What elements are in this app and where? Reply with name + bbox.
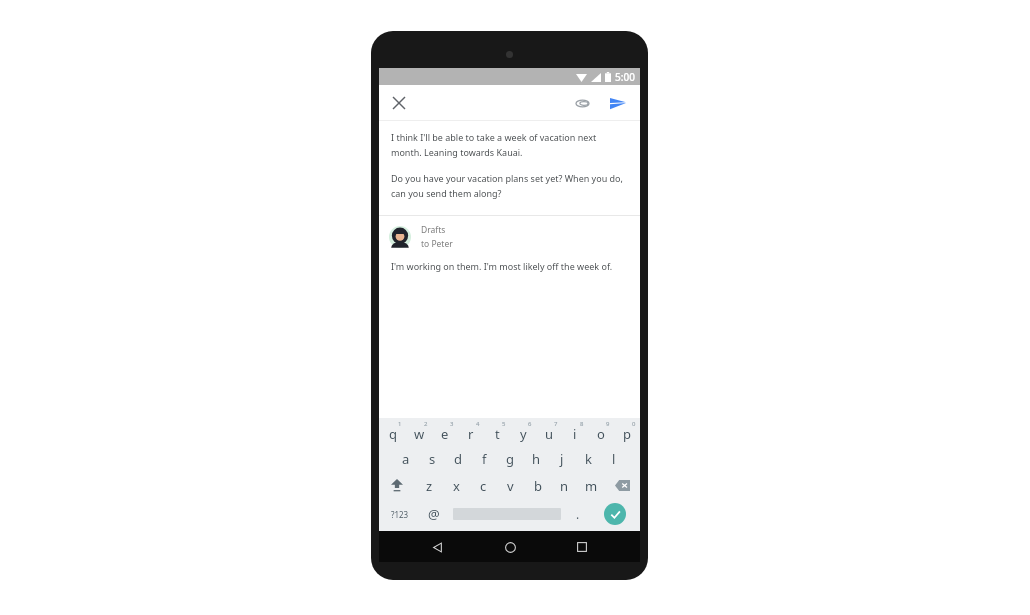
- staticText: j: [560, 450, 564, 468]
- staticText: 9: [606, 420, 610, 428]
- staticText: q: [389, 425, 397, 443]
- staticText: ?123: [391, 509, 409, 520]
- staticText: h: [532, 450, 541, 468]
- staticText: y: [520, 425, 527, 443]
- staticText: I think I'll be able to take a week of v…: [391, 131, 628, 158]
- staticText: 1: [398, 420, 402, 428]
- staticText: 6: [528, 420, 532, 428]
- button[interactable]: 9: [588, 418, 614, 445]
- staticText: 5: [502, 420, 506, 428]
- button[interactable]: 8: [562, 418, 588, 445]
- staticText: 7: [554, 420, 558, 428]
- button[interactable]: @: [420, 499, 448, 529]
- button[interactable]: 4: [458, 418, 484, 445]
- button[interactable]: 3: [432, 418, 458, 445]
- staticText: @: [428, 505, 440, 523]
- staticText: Do you have your vacation plans set yet?…: [391, 172, 628, 199]
- button[interactable]: ?123: [379, 499, 420, 529]
- button[interactable]: k: [575, 445, 601, 472]
- staticText: r: [468, 425, 474, 443]
- button[interactable]: h: [523, 445, 549, 472]
- staticText: n: [560, 477, 569, 495]
- staticText: 5:00: [615, 70, 635, 84]
- staticText: Drafts: [421, 224, 446, 236]
- staticText: g: [506, 450, 514, 468]
- button[interactable]: f: [471, 445, 497, 472]
- staticText: i: [573, 425, 577, 443]
- staticText: u: [545, 425, 554, 443]
- staticText: x: [453, 477, 460, 495]
- button[interactable]: 5: [484, 418, 510, 445]
- button[interactable]: g: [497, 445, 523, 472]
- button[interactable]: j: [549, 445, 575, 472]
- button[interactable]: Attach file: [570, 91, 594, 115]
- staticText: e: [441, 425, 449, 443]
- button[interactable]: 2: [406, 418, 432, 445]
- staticText: w: [414, 425, 425, 443]
- button[interactable]: .: [565, 499, 590, 529]
- button[interactable]: n: [551, 472, 578, 499]
- button[interactable]: l: [601, 445, 627, 472]
- button[interactable]: 6: [510, 418, 536, 445]
- staticText: 8: [580, 420, 584, 428]
- button[interactable]: Drafts: [389, 224, 630, 250]
- button[interactable]: Recents: [567, 532, 597, 562]
- button[interactable]: x: [443, 472, 470, 499]
- staticText: .: [576, 506, 580, 522]
- staticText: c: [480, 477, 487, 495]
- staticText: I'm working on them. I'm most likely off…: [391, 260, 613, 272]
- button[interactable]: Done: [590, 499, 640, 529]
- button[interactable]: z: [415, 472, 443, 499]
- button[interactable]: Home: [495, 532, 525, 562]
- staticText: z: [426, 477, 433, 495]
- staticText: l: [612, 450, 616, 468]
- button[interactable]: s: [419, 445, 445, 472]
- button[interactable]: Shift: [379, 472, 415, 499]
- button[interactable]: Space: [448, 499, 565, 529]
- staticText: t: [495, 425, 500, 443]
- staticText: to Peter: [421, 238, 453, 250]
- staticText: f: [482, 450, 487, 468]
- staticText: 0: [632, 420, 636, 428]
- staticText: a: [402, 450, 410, 468]
- staticText: s: [429, 450, 436, 468]
- button[interactable]: c: [470, 472, 497, 499]
- staticText: m: [585, 477, 598, 495]
- staticText: 3: [450, 420, 454, 428]
- staticText: d: [454, 450, 462, 468]
- staticText: v: [507, 477, 514, 495]
- button[interactable]: v: [497, 472, 524, 499]
- button[interactable]: Back: [422, 532, 452, 562]
- button[interactable]: m: [578, 472, 605, 499]
- staticText: o: [597, 425, 605, 443]
- button[interactable]: 7: [536, 418, 562, 445]
- button[interactable]: 1: [379, 418, 406, 445]
- button[interactable]: Backspace: [605, 472, 640, 499]
- button[interactable]: 0: [614, 418, 640, 445]
- staticText: 2: [424, 420, 428, 428]
- button[interactable]: b: [524, 472, 551, 499]
- button[interactable]: d: [445, 445, 471, 472]
- staticText: p: [623, 425, 631, 443]
- staticText: k: [585, 450, 592, 468]
- staticText: 4: [476, 420, 480, 428]
- staticText: b: [534, 477, 542, 495]
- button[interactable]: a: [393, 445, 419, 472]
- button[interactable]: Close: [387, 91, 411, 115]
- button[interactable]: Send: [606, 91, 630, 115]
